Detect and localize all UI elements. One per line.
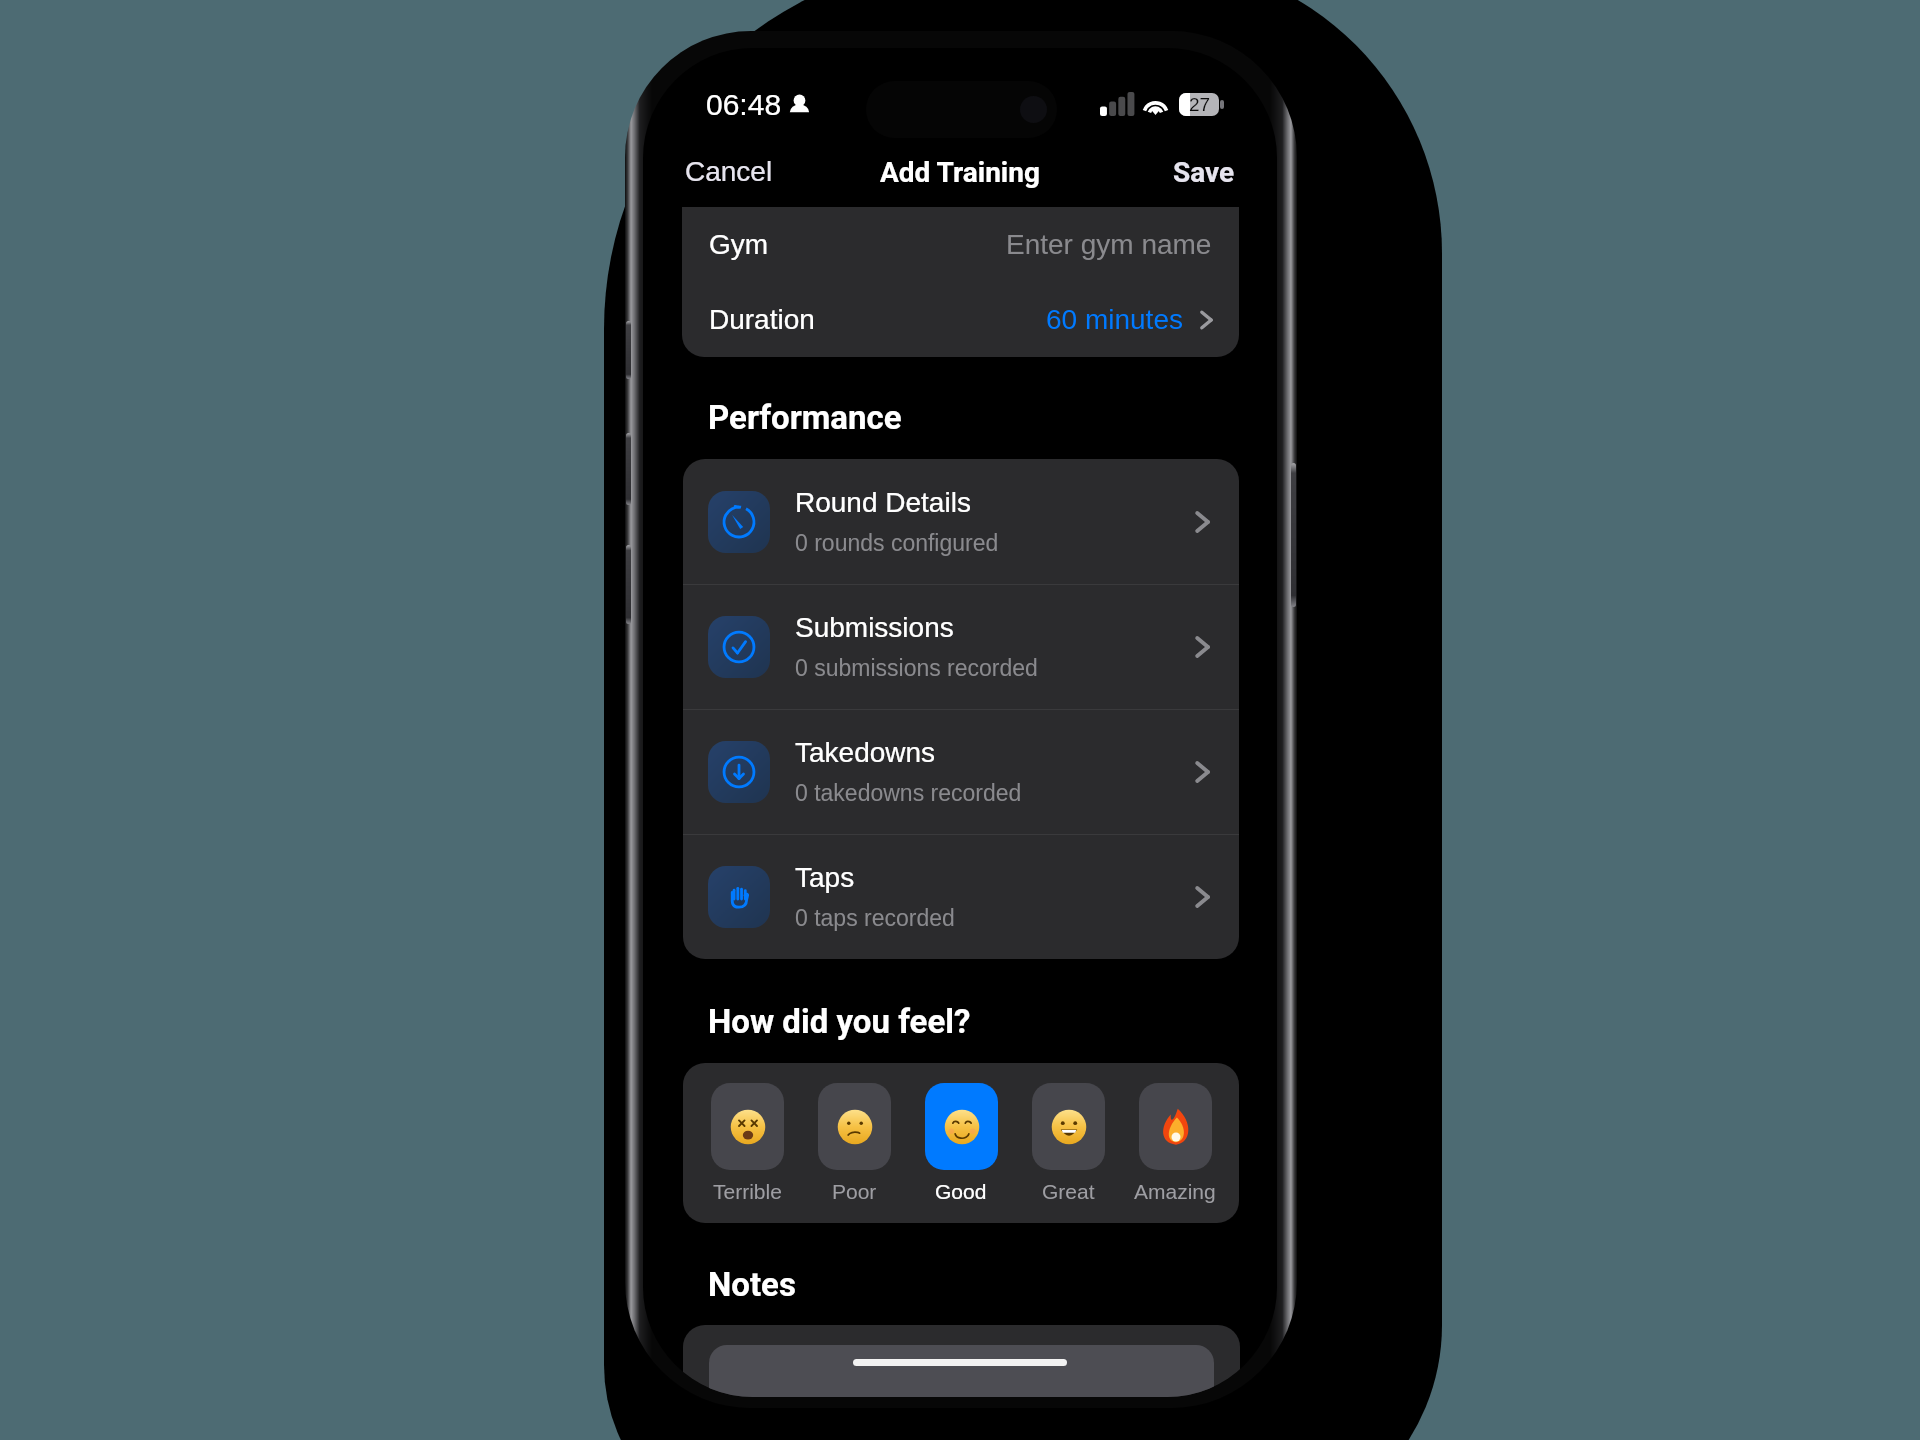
button[interactable]: Terrible	[703, 1063, 791, 1203]
staticText: How did you feel?	[708, 1002, 971, 1041]
staticText: 0 takedowns recorded	[795, 780, 1022, 806]
staticText: Good	[935, 1180, 987, 1203]
staticText: 60 minutes	[1046, 304, 1183, 335]
button[interactable]: Save	[1161, 150, 1247, 195]
staticText: 27	[1189, 94, 1211, 115]
staticText: Performance	[708, 398, 902, 437]
button[interactable]: Amazing	[1131, 1063, 1219, 1203]
button[interactable]: Poor	[810, 1063, 898, 1203]
staticText: Poor	[832, 1180, 877, 1203]
staticText: Terrible	[713, 1180, 782, 1203]
staticText: Add Training	[880, 156, 1040, 189]
button[interactable]: Cancel	[673, 150, 785, 193]
staticText: Enter gym name	[1006, 229, 1212, 260]
staticText: Duration	[709, 304, 815, 335]
staticText: Round Details	[795, 487, 971, 518]
staticText: 0 taps recorded	[795, 905, 955, 931]
staticText: Amazing	[1134, 1180, 1216, 1203]
staticText: 06:48	[706, 88, 782, 122]
staticText: Cancel	[685, 156, 773, 187]
button[interactable]: Round Details	[683, 459, 1239, 584]
staticText: Great	[1042, 1180, 1095, 1203]
staticText: 0 submissions recorded	[795, 655, 1038, 681]
button[interactable]: Great	[1024, 1063, 1112, 1203]
button[interactable]: Submissions	[683, 584, 1239, 709]
button[interactable]: Duration	[682, 282, 1239, 357]
staticText: Taps	[795, 862, 855, 893]
staticText: Takedowns	[795, 737, 936, 768]
button[interactable]: Good	[917, 1063, 1005, 1203]
staticText: 0 rounds configured	[795, 530, 999, 556]
button[interactable]: Taps	[683, 834, 1239, 959]
staticText: Submissions	[795, 612, 954, 643]
staticText: Save	[1173, 156, 1235, 189]
button[interactable]: Takedowns	[683, 709, 1239, 834]
staticText: Notes	[708, 1265, 796, 1304]
staticText: Gym	[709, 229, 769, 260]
